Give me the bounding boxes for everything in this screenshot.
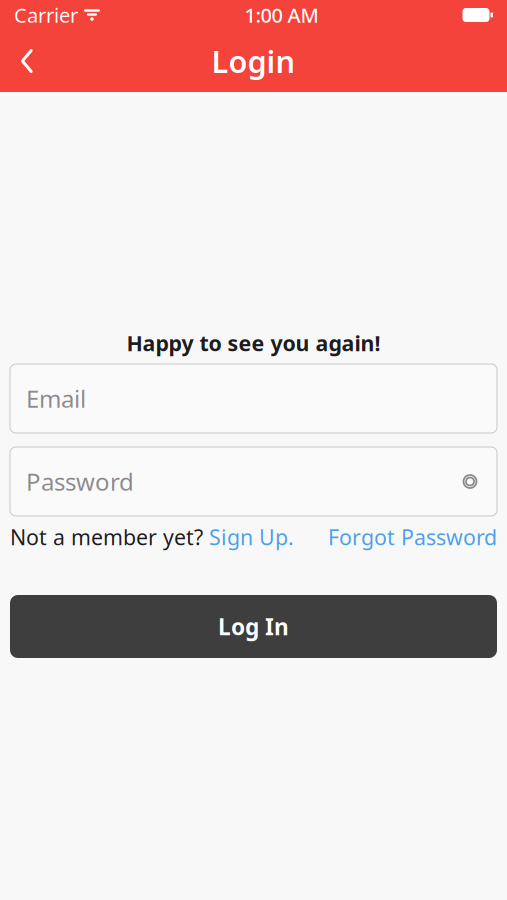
staticText: Not a member yet? xyxy=(10,523,203,551)
button[interactable]: Log In xyxy=(10,595,497,658)
staticText: Carrier xyxy=(14,2,78,28)
button[interactable]: Sign Up. xyxy=(203,523,294,551)
staticText: Sign Up. xyxy=(203,523,294,551)
staticText: Password xyxy=(26,466,134,497)
staticText: Happy to see you again! xyxy=(126,329,380,357)
staticText: Forgot Password xyxy=(328,523,497,551)
button[interactable]: Show password xyxy=(450,461,490,501)
button[interactable]: Forgot Password xyxy=(328,523,497,551)
staticText: Login xyxy=(211,41,295,81)
button[interactable]: Back xyxy=(0,34,54,88)
staticText: Log In xyxy=(218,611,289,641)
staticText: Email xyxy=(26,383,86,414)
staticText: 1:00 AM xyxy=(244,2,318,28)
